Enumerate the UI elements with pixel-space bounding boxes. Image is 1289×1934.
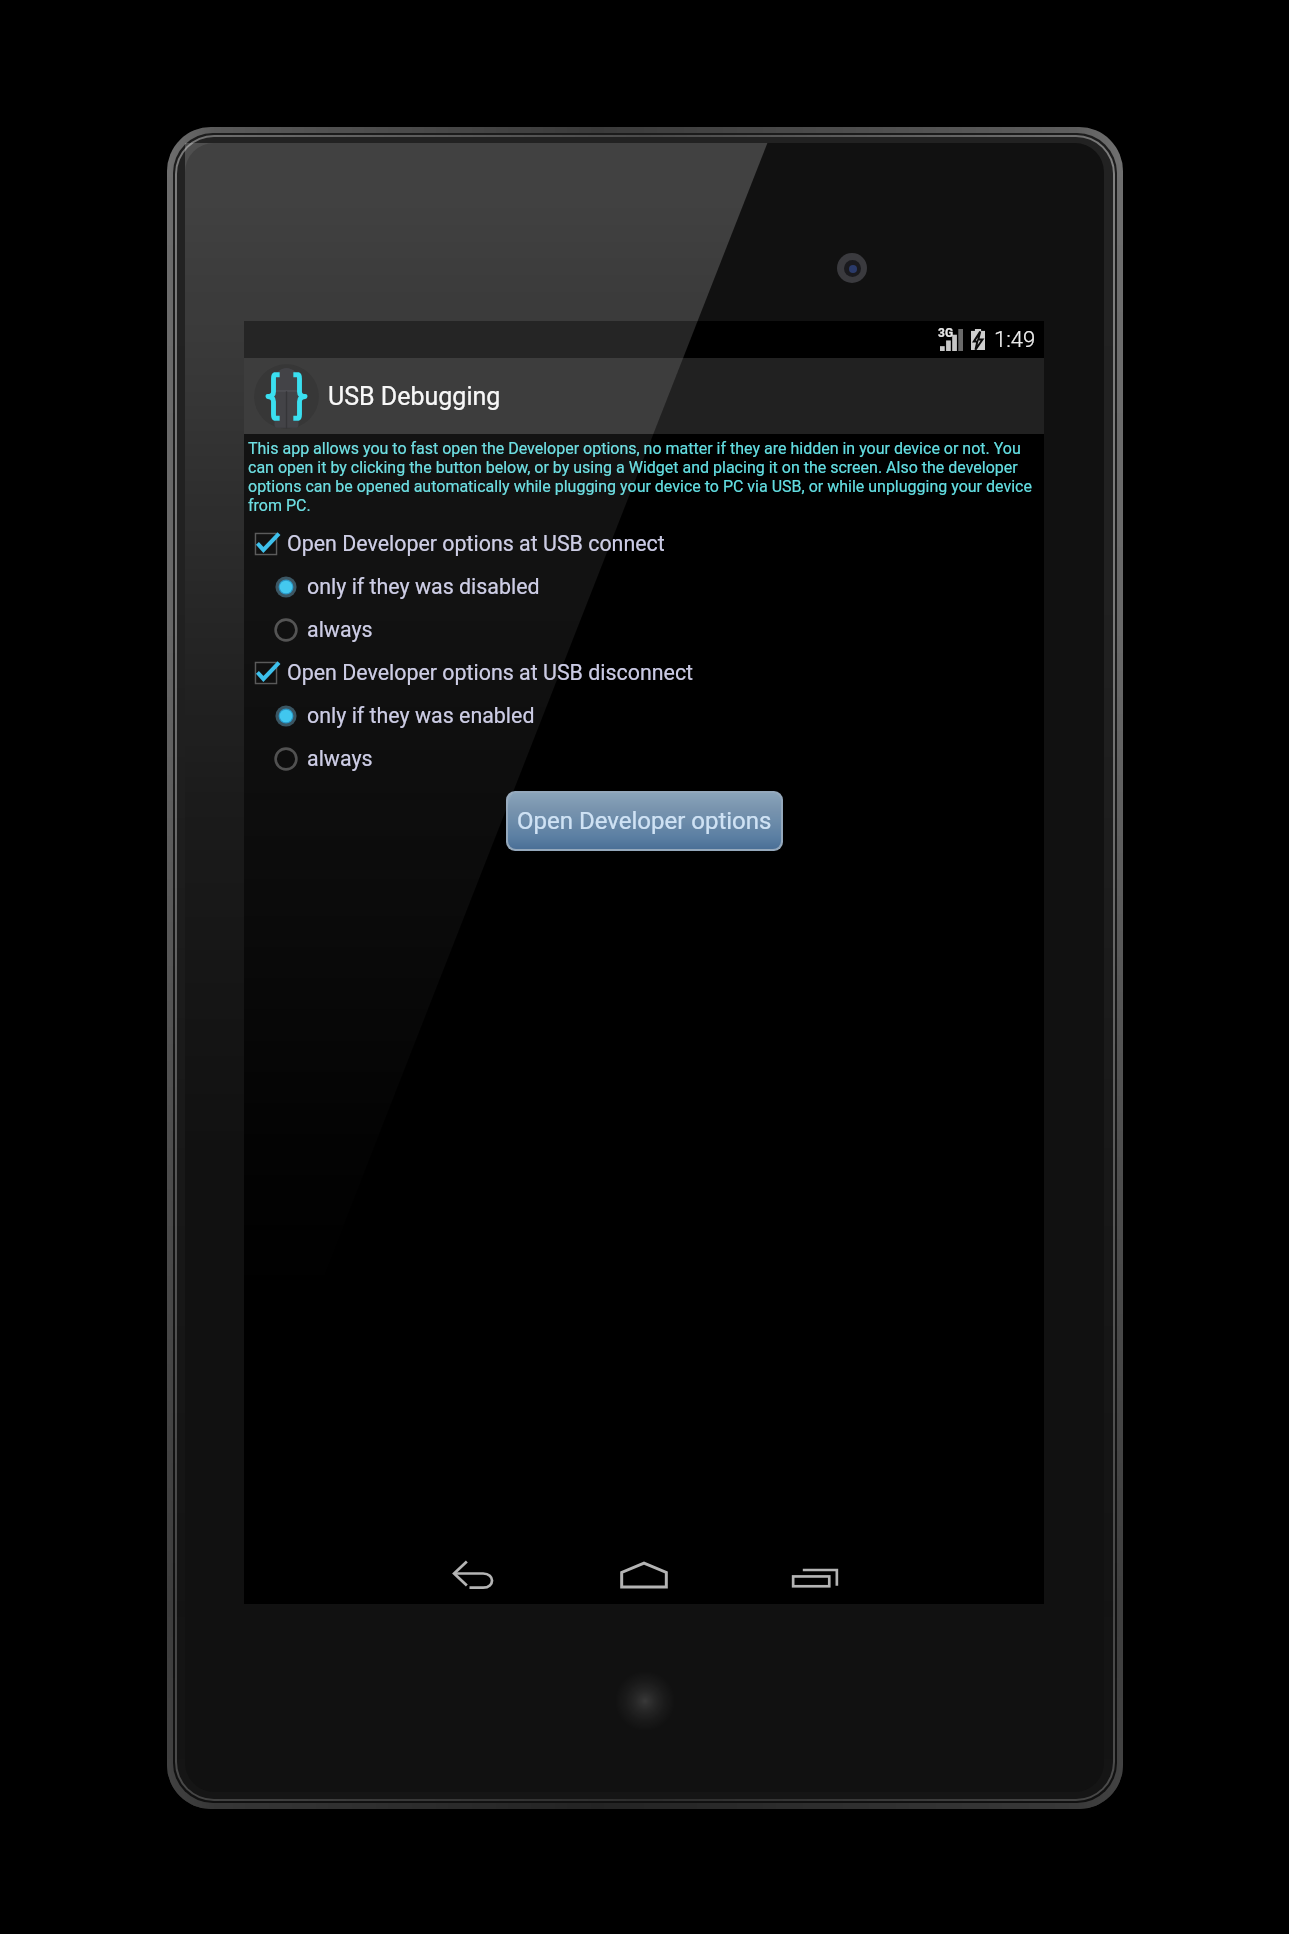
staticText: Open Developer options at USB disconnect: [287, 660, 694, 685]
staticText: always: [307, 746, 373, 771]
button[interactable]: Open Developer options at USB connect: [244, 522, 1044, 565]
staticText: This app allows you to fast open the Dev…: [248, 439, 1036, 515]
button[interactable]: only if they was enabled: [244, 694, 1044, 737]
button[interactable]: always: [244, 608, 1044, 651]
staticText: 3G: [938, 326, 954, 340]
button[interactable]: Home: [558, 1546, 729, 1604]
staticText: always: [307, 617, 373, 642]
button[interactable]: only if they was disabled: [244, 565, 1044, 608]
staticText: only if they was disabled: [307, 574, 540, 599]
button[interactable]: Open Developer options: [508, 793, 781, 849]
staticText: 1:49: [994, 327, 1036, 353]
staticText: Open Developer options at USB connect: [287, 531, 665, 556]
staticText: USB Debugging: [328, 382, 501, 411]
staticText: only if they was enabled: [307, 703, 535, 728]
staticText: Open Developer options: [517, 807, 772, 835]
button[interactable]: always: [244, 737, 1044, 780]
button[interactable]: Recent apps: [729, 1546, 900, 1604]
button[interactable]: Open Developer options at USB disconnect: [244, 651, 1044, 694]
button[interactable]: Back: [388, 1546, 558, 1604]
